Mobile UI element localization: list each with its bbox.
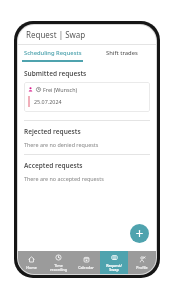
button[interactable]: Profile: [128, 251, 156, 274]
staticText: Profile: [128, 265, 156, 270]
staticText: Request/ Swap: [100, 263, 128, 272]
staticText: Rejected requests: [24, 127, 81, 136]
button[interactable]: Request/ Swap: [100, 251, 128, 274]
button[interactable]: Frei (Wunsch): [24, 82, 150, 112]
staticText: Accepted requests: [24, 161, 83, 170]
staticText: There are no denied requests: [24, 141, 99, 148]
staticText: 25.07.2024: [34, 98, 62, 105]
staticText: Submitted requests: [24, 69, 87, 78]
staticText: Scheduling Requests: [24, 49, 82, 57]
staticText: Request | Swap: [26, 29, 86, 40]
button[interactable]: Home: [18, 251, 45, 274]
button[interactable]: Add request: [130, 224, 149, 243]
staticText: Frei (Wunsch): [43, 86, 78, 93]
button[interactable]: Scheduling Requests: [18, 45, 87, 60]
staticText: Shift trades: [106, 49, 138, 57]
staticText: There are no accepted requests: [24, 175, 104, 182]
staticText: Calendar: [72, 265, 100, 270]
staticText: Home: [18, 265, 45, 270]
button[interactable]: Shift trades: [87, 45, 156, 60]
button[interactable]: Calendar: [72, 251, 100, 274]
button[interactable]: Time recording: [45, 251, 72, 274]
staticText: Time recording: [45, 263, 72, 272]
